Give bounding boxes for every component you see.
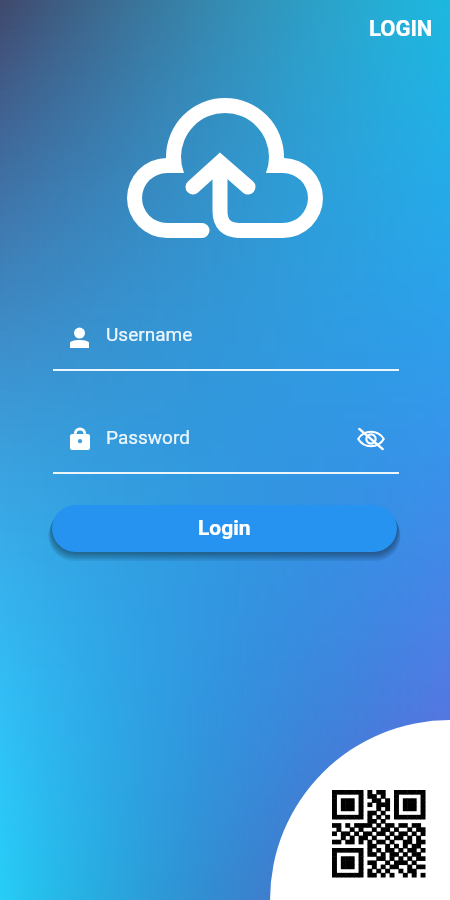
staticText: LOGIN — [369, 16, 433, 42]
staticText: Login — [198, 516, 251, 541]
button[interactable]: Password — [53, 416, 399, 474]
staticText: Password — [106, 426, 190, 448]
button[interactable]: Show password — [354, 424, 388, 454]
staticText: Username — [106, 323, 193, 345]
button[interactable]: LOGIN — [357, 4, 445, 54]
button[interactable]: Username — [53, 313, 399, 371]
button[interactable]: Login — [52, 505, 397, 552]
button[interactable]: QR code — [332, 790, 425, 877]
